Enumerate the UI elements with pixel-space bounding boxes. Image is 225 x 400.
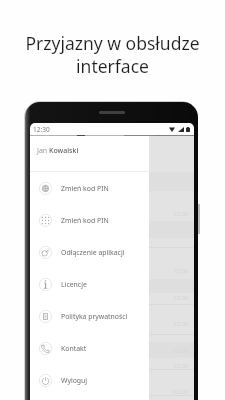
button[interactable]: Kontakt: [30, 332, 149, 364]
staticText: 12:00: [173, 267, 189, 275]
staticText: Jan: [37, 146, 49, 156]
button[interactable]: Zmień kod PIN: [30, 204, 149, 236]
button[interactable]: Polityka prywatności: [30, 300, 149, 332]
staticText: Przyjazny w obsłudze interface: [0, 31, 225, 78]
staticText: 12:00: [173, 210, 189, 218]
staticText: Odłączenie aplikacji: [61, 248, 125, 257]
staticText: Kowalski: [49, 146, 79, 156]
staticText: 12:30: [33, 125, 50, 134]
staticText: Zmień kod PIN: [61, 216, 109, 225]
staticText: Zmień kod PIN: [61, 184, 109, 193]
staticText: Licencje: [61, 280, 87, 289]
staticText: 12:00: [173, 320, 189, 328]
staticText: Wyloguj: [61, 376, 88, 385]
button[interactable]: Zmień kod PIN: [30, 172, 149, 204]
button[interactable]: Wyloguj: [30, 364, 149, 396]
button[interactable]: Odłączenie aplikacji: [30, 236, 149, 268]
staticText: 12:00: [173, 362, 189, 370]
staticText: Polityka prywatności: [61, 312, 128, 321]
button[interactable]: Licencje: [30, 268, 149, 300]
staticText: 12:00: [173, 388, 189, 396]
staticText: 12:00: [173, 294, 189, 302]
staticText: Kontakt: [61, 344, 87, 353]
